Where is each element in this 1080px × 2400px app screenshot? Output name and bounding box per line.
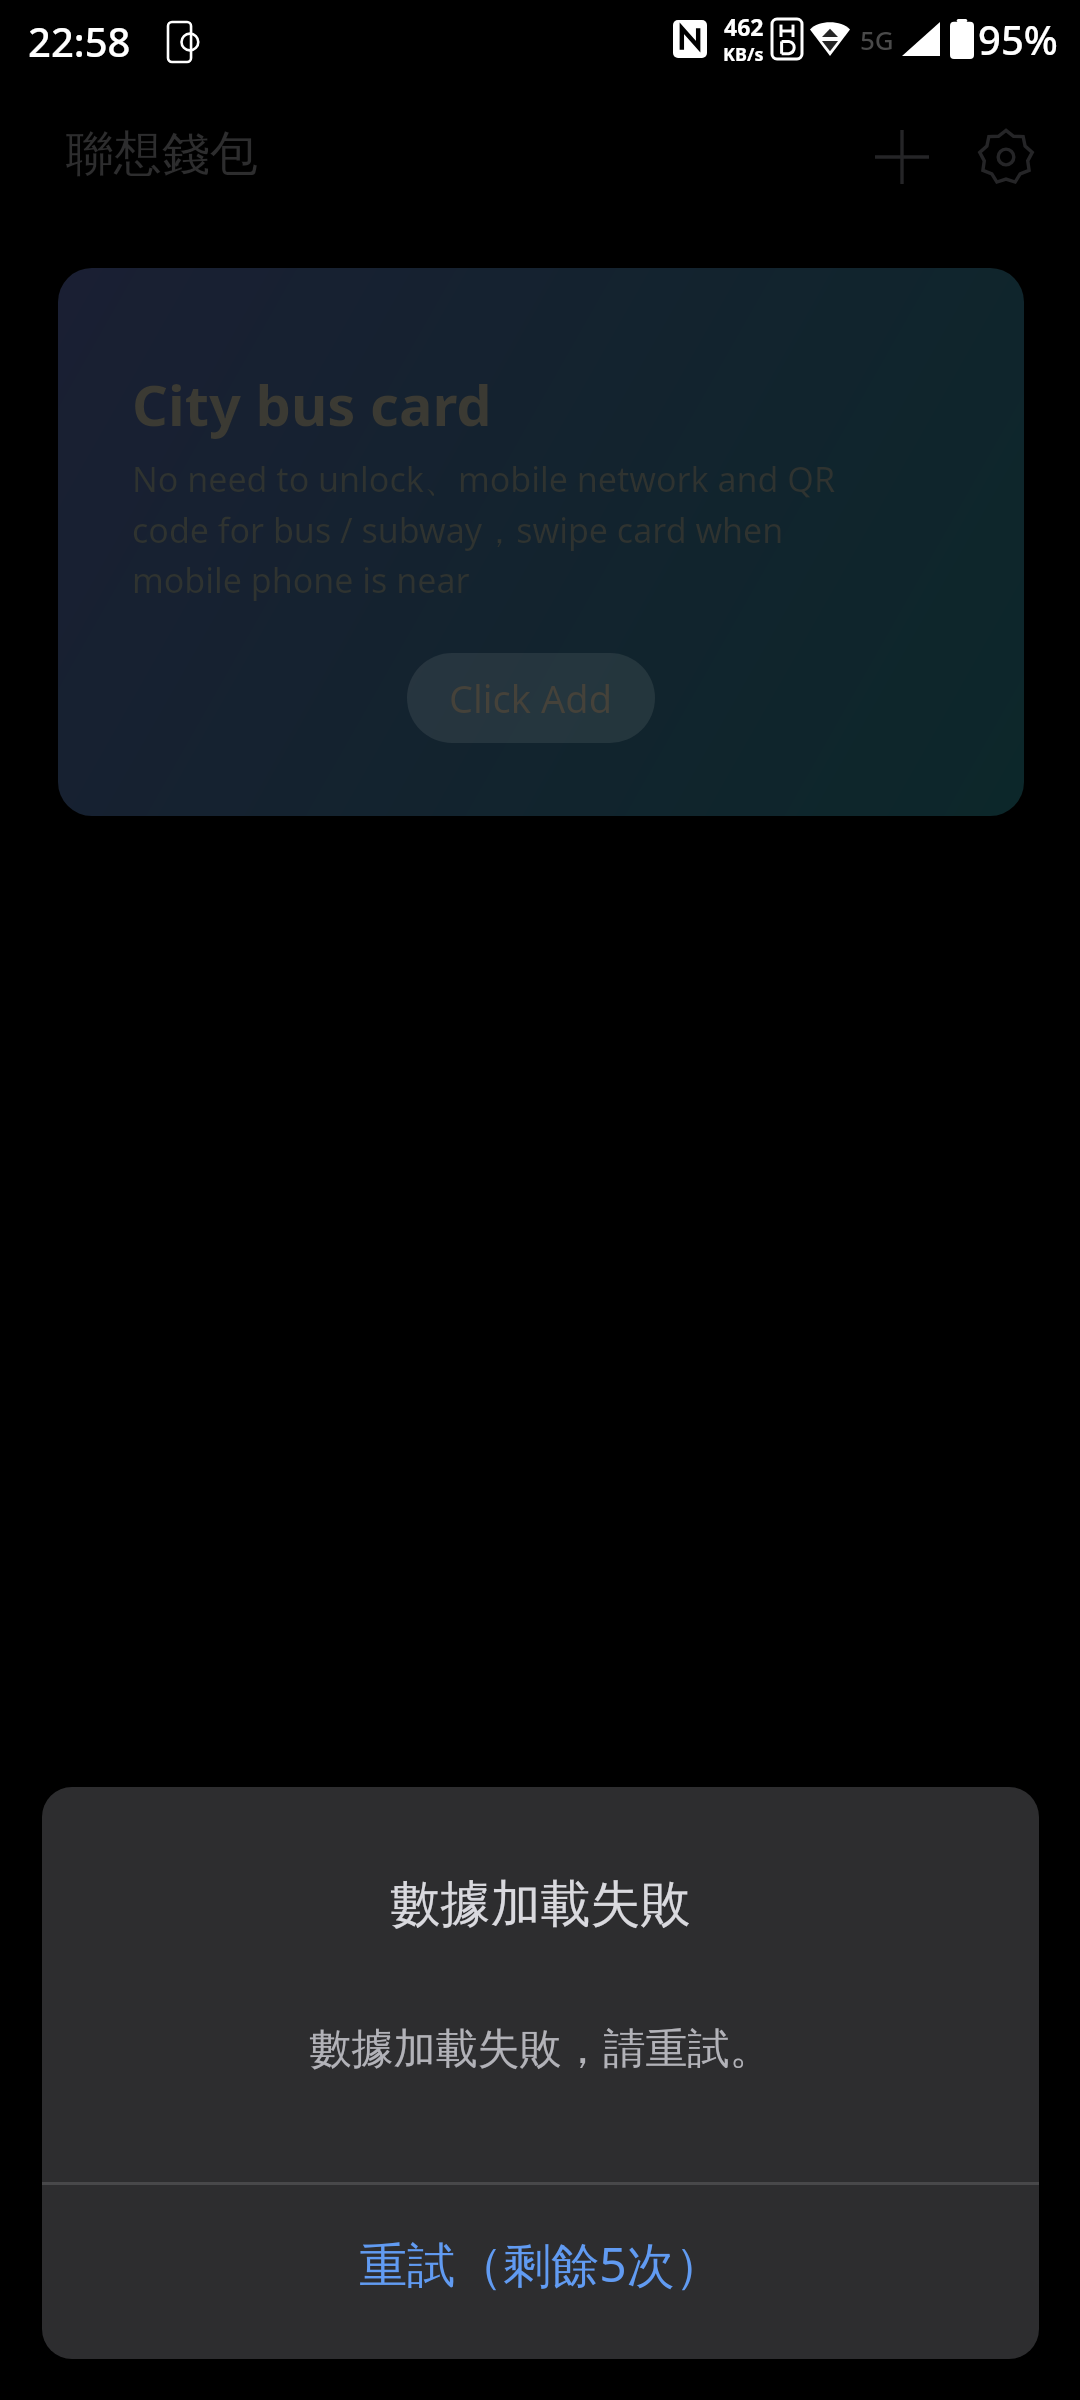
staticText: 重試（剩餘5次） [359,2231,723,2297]
button[interactable]: Click Add [407,653,655,743]
staticText: 數據加載失敗 [42,1873,1039,1936]
button[interactable]: Settings [954,105,1058,209]
staticText: KB/s [723,42,764,67]
staticText: City bus card [132,366,492,442]
staticText: 462 [724,11,764,42]
staticText: No need to unlock、mobile network and QR … [132,456,962,603]
button[interactable]: Add card [850,105,954,209]
staticText: 22:58 [28,14,131,68]
staticText: 5G [860,22,894,57]
button[interactable]: City bus card [58,268,1024,816]
staticText: 95% [978,12,1058,66]
staticText: Click Add [449,672,613,724]
button[interactable]: 重試（剩餘5次） [42,2185,1039,2359]
staticText: 聯想錢包 [66,124,258,184]
staticText: 數據加載失敗，請重試。 [42,2023,1039,2076]
